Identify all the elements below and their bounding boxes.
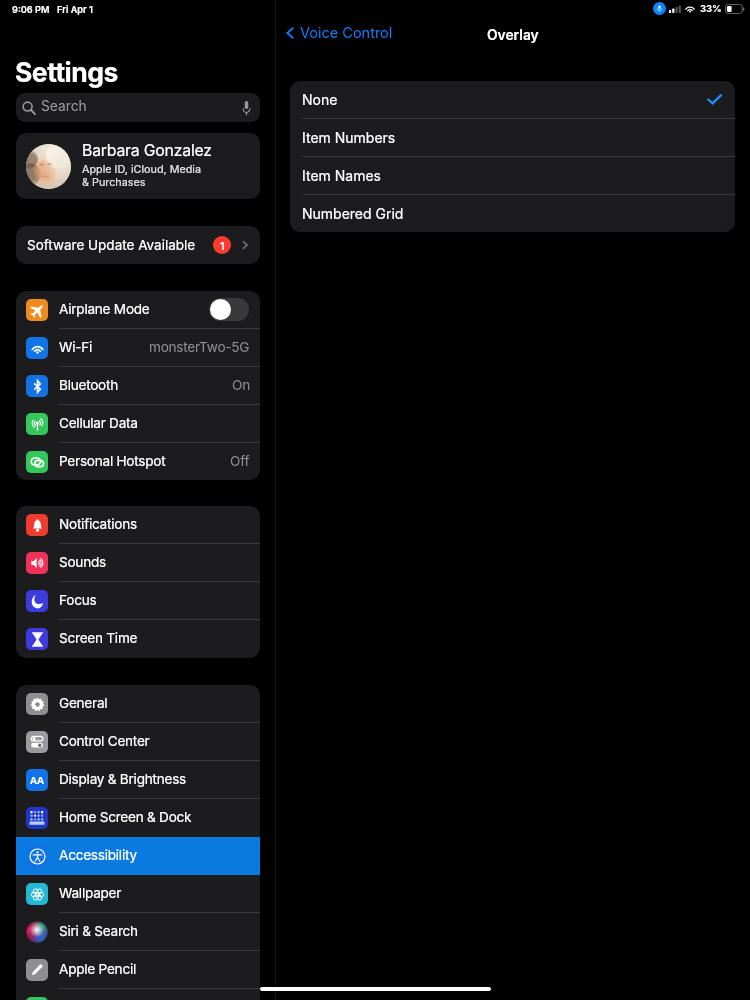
staticText: Personal Hotspot xyxy=(59,453,166,469)
staticText: On xyxy=(232,377,250,393)
staticText: Siri & Search xyxy=(59,923,138,939)
staticText: Apple Pencil xyxy=(59,961,136,977)
staticText: Wallpaper xyxy=(59,885,122,901)
staticText: Wi-Fi xyxy=(59,339,93,355)
staticText: Cellular Data xyxy=(59,415,138,431)
button[interactable]: Item Numbers xyxy=(290,119,735,156)
button[interactable]: Bluetooth xyxy=(16,367,260,405)
staticText: Home Screen & Dock xyxy=(59,809,192,825)
staticText: Display & Brightness xyxy=(59,771,187,787)
staticText: General xyxy=(59,695,108,711)
button[interactable]: Apple Pencil xyxy=(16,951,260,989)
staticText: Item Names xyxy=(302,167,381,184)
button[interactable]: Control Center xyxy=(16,723,260,761)
staticText: 1 xyxy=(220,239,225,252)
staticText: Fri Apr 1 xyxy=(57,4,93,15)
staticText: Screen Time xyxy=(59,630,138,646)
staticText: Apple ID, iCloud, Media xyxy=(82,163,202,176)
button[interactable]: Wi-Fi xyxy=(16,329,260,367)
staticText: Software Update Available xyxy=(27,237,196,253)
button[interactable]: Item Names xyxy=(290,157,735,194)
staticText: Accessibility xyxy=(59,847,137,863)
staticText: & Purchases xyxy=(82,176,146,189)
staticText: Off xyxy=(230,453,250,469)
button[interactable]: Focus xyxy=(16,582,260,620)
button[interactable]: Sounds xyxy=(16,544,260,582)
staticText: 33% xyxy=(700,3,722,15)
button[interactable]: Home Screen & Dock xyxy=(16,799,260,837)
button[interactable]: Screen Time xyxy=(16,620,260,658)
button[interactable]: Barbara Gonzalez xyxy=(16,133,260,199)
button[interactable]: Search xyxy=(16,93,260,122)
staticText: Overlay xyxy=(487,27,539,44)
staticText: Voice Control xyxy=(300,24,393,42)
button[interactable]: Software Update Available xyxy=(16,226,260,264)
staticText: Notifications xyxy=(59,516,137,532)
staticText: Bluetooth xyxy=(59,377,119,393)
staticText: None xyxy=(302,91,338,108)
staticText: Search xyxy=(41,98,87,115)
staticText: Barbara Gonzalez xyxy=(82,141,212,160)
staticText: Control Center xyxy=(59,733,150,749)
other: Selected xyxy=(706,92,723,107)
button[interactable]: Cellular Data xyxy=(16,405,260,443)
button[interactable]: Numbered Grid xyxy=(290,195,735,232)
button[interactable]: General xyxy=(16,685,260,723)
button[interactable]: Airplane Mode toggle xyxy=(209,298,249,321)
button[interactable]: Voice search xyxy=(239,98,254,118)
button[interactable]: Notifications xyxy=(16,506,260,544)
staticText: Sounds xyxy=(59,554,106,570)
button[interactable]: None xyxy=(290,81,735,118)
button[interactable]: Voice Control xyxy=(281,24,395,42)
button[interactable]: AA xyxy=(16,761,260,799)
button[interactable]: Siri & Search xyxy=(16,913,260,951)
staticText: monsterTwo-5G xyxy=(149,339,250,355)
staticText: Airplane Mode xyxy=(59,301,150,317)
button[interactable]: Personal Hotspot xyxy=(16,443,260,480)
staticText: Numbered Grid xyxy=(302,205,404,222)
staticText: Settings xyxy=(15,56,118,88)
button[interactable]: Wallpaper xyxy=(16,875,260,913)
button[interactable]: Accessibility xyxy=(16,837,260,875)
staticText: Item Numbers xyxy=(302,129,396,146)
staticText: AA xyxy=(30,775,44,786)
staticText: 9:06 PM xyxy=(12,4,50,15)
button[interactable]: Airplane Mode xyxy=(16,291,260,329)
button[interactable]: Face ID & Passcode xyxy=(16,989,260,1000)
staticText: Focus xyxy=(59,592,97,608)
